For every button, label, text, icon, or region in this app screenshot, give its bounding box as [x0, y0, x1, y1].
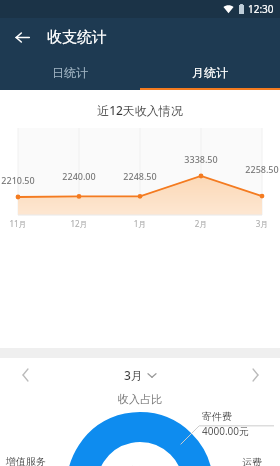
staticText: 2248.50	[118, 170, 162, 182]
staticText: 3月	[124, 367, 143, 383]
staticText: 增值服务	[6, 455, 46, 466]
staticText: 2240.00	[57, 170, 101, 182]
staticText: 2210.50	[0, 174, 40, 186]
button[interactable]: 月统计	[140, 56, 280, 88]
staticText: 3338.50	[179, 153, 223, 165]
staticText: 收入占比	[0, 392, 280, 406]
button[interactable]: 日统计	[0, 56, 140, 88]
staticText: 收支统计	[47, 28, 107, 47]
staticText: 2月	[187, 218, 215, 229]
button[interactable]: Previous month	[14, 364, 36, 386]
staticText: 日统计	[52, 65, 88, 80]
staticText: 12:30	[248, 2, 274, 16]
staticText: 近12天收入情况	[0, 102, 280, 118]
button[interactable]: 3月	[124, 367, 156, 383]
staticText: 运费	[242, 456, 262, 466]
staticText: 寄件费	[202, 410, 274, 423]
staticText: 2258.50	[240, 163, 280, 175]
staticText: 月统计	[192, 65, 228, 80]
staticText: 11月	[4, 218, 32, 229]
staticText: 3月	[248, 218, 276, 229]
staticText: 12月	[65, 218, 93, 229]
staticText: 1月	[126, 218, 154, 229]
button[interactable]: Back	[8, 23, 36, 51]
button[interactable]: Next month	[244, 364, 266, 386]
staticText: 4000.00元	[202, 424, 274, 438]
